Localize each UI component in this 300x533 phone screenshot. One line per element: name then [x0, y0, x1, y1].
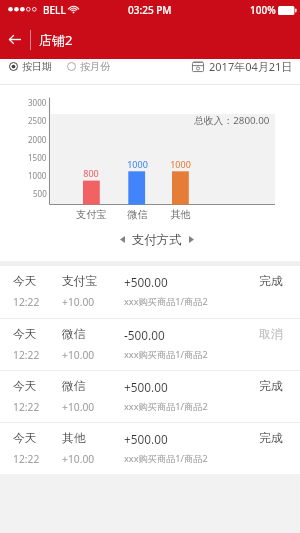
staticText: 其他	[62, 431, 124, 446]
staticText: 1000	[170, 158, 191, 170]
staticText: 支付宝	[62, 274, 124, 289]
staticText: xxx购买商品1/商品2	[124, 452, 283, 465]
staticText: 微信	[127, 208, 148, 221]
staticText: 今天	[13, 431, 62, 446]
staticText: 今天	[13, 327, 62, 342]
staticText: +10.00	[62, 400, 124, 414]
staticText: 1000	[28, 170, 47, 181]
staticText: 12:22	[13, 348, 62, 362]
staticText: 100%	[250, 3, 276, 17]
staticText: 微信	[62, 379, 124, 394]
button[interactable]: Back	[0, 20, 30, 59]
staticText: -500.00	[124, 327, 259, 343]
staticText: 支付方式	[132, 232, 182, 248]
staticText: BELL	[43, 3, 66, 17]
staticText: +10.00	[62, 452, 124, 466]
staticText: 总收入：2800.00	[194, 114, 270, 127]
staticText: +10.00	[62, 295, 124, 309]
staticText: 2500	[28, 115, 47, 126]
staticText: +10.00	[62, 348, 124, 362]
staticText: xxx购买商品1/商品2	[124, 348, 283, 361]
staticText: 1500	[28, 152, 47, 163]
button[interactable]: 今天	[0, 423, 300, 474]
staticText: +500.00	[124, 379, 259, 395]
staticText: xxx购买商品1/商品2	[124, 295, 283, 308]
button[interactable]: 按日期	[9, 60, 52, 73]
staticText: 800	[83, 167, 99, 179]
staticText: 2000	[28, 134, 47, 145]
staticText: 按日期	[22, 60, 52, 73]
button[interactable]: 按月份	[67, 60, 110, 73]
button[interactable]: 今天	[0, 266, 300, 318]
staticText: 12:22	[13, 295, 62, 309]
button[interactable]: 今天	[0, 319, 300, 370]
staticText: 完成	[259, 274, 283, 289]
staticText: +500.00	[124, 431, 259, 447]
staticText: 按月份	[80, 60, 110, 73]
staticText: 店铺2	[39, 31, 73, 49]
staticText: 3000	[28, 97, 47, 108]
staticText: 今天	[13, 274, 62, 289]
button[interactable]: Next	[185, 231, 198, 248]
staticText: xxx购买商品1/商品2	[124, 400, 283, 413]
staticText: 2017年04月21日	[209, 59, 293, 74]
staticText: 今天	[13, 379, 62, 394]
staticText: 完成	[259, 379, 283, 394]
staticText: 微信	[62, 327, 124, 342]
staticText: 1000	[127, 158, 148, 170]
staticText: 取消	[259, 327, 283, 342]
staticText: 其他	[170, 208, 191, 221]
staticText: 完成	[259, 431, 283, 446]
staticText: 12:22	[13, 452, 62, 466]
button[interactable]: 今天	[0, 371, 300, 422]
staticText: 支付宝	[76, 208, 107, 221]
staticText: 03:25 PM	[128, 3, 172, 17]
button[interactable]: Previous	[116, 231, 129, 248]
staticText: 12:22	[13, 400, 62, 414]
staticText: 500	[33, 188, 47, 199]
button[interactable]: 2017年04月21日	[192, 59, 293, 74]
staticText: +500.00	[124, 274, 259, 290]
